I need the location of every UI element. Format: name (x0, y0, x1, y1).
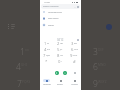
staticText: Settings (48, 24, 54, 26)
staticText: WXYZ (73, 54, 78, 56)
staticText: TUV (60, 54, 64, 56)
button[interactable]: 6 (67, 47, 81, 53)
button[interactable]: Open contacts (40, 15, 81, 21)
button[interactable]: More options (74, 6, 76, 8)
staticText: 7 (17, 78, 22, 90)
staticText: 7 (43, 53, 46, 59)
staticText: Create new contact (48, 11, 62, 13)
staticText: 0412 (57, 38, 64, 42)
button[interactable]: 1 (40, 41, 53, 47)
staticText: 9 (70, 53, 73, 59)
staticText: 6 (93, 61, 98, 73)
button[interactable]: 3 (67, 41, 81, 47)
staticText: 1 (44, 41, 47, 47)
staticText: # (73, 59, 76, 65)
staticText: + (61, 60, 62, 62)
staticText: 5 (57, 47, 60, 53)
button[interactable]: Call (63, 71, 67, 75)
staticText: 1 (20, 46, 25, 58)
staticText: Search contacts (43, 5, 59, 8)
button[interactable]: 8 (53, 53, 67, 59)
staticText: 2 (57, 41, 60, 47)
staticText: ABC (60, 42, 64, 44)
button[interactable]: Settings (40, 22, 81, 28)
button[interactable]: Contacts (67, 78, 81, 90)
button[interactable]: Favourites (40, 78, 53, 90)
staticText: Favourites (43, 83, 51, 85)
button[interactable]: Recents (53, 78, 67, 90)
button[interactable]: 2 (53, 41, 67, 47)
button[interactable]: 9 (67, 53, 81, 59)
staticText: 0 (58, 59, 61, 65)
button[interactable]: Create new contact (40, 9, 81, 15)
button[interactable]: 4 (40, 47, 53, 53)
staticText: GHI (47, 48, 50, 50)
staticText: Contacts (71, 83, 78, 85)
staticText: 3 (71, 41, 74, 47)
staticText: DEF (74, 42, 77, 44)
staticText: * (45, 59, 48, 65)
staticText: oo (47, 42, 49, 44)
staticText: JKL (60, 48, 63, 50)
button[interactable]: 0 (53, 59, 67, 65)
staticText: 6 (71, 47, 74, 53)
button[interactable]: Search contacts (41, 4, 80, 9)
staticText: 10:05 (44, 1, 50, 4)
button[interactable]: Video call (55, 71, 59, 75)
button[interactable]: # (67, 59, 81, 65)
staticText: 3 (93, 46, 98, 58)
button[interactable]: 7 (40, 53, 53, 59)
staticText: 9 (93, 78, 98, 90)
staticText: 8 (57, 53, 60, 59)
staticText: Recents (57, 83, 63, 85)
staticText: PQRS (46, 54, 51, 56)
staticText: 4 (16, 61, 21, 73)
staticText: Open contacts (48, 17, 59, 19)
staticText: MNO (74, 48, 78, 50)
staticText: 4 (44, 47, 47, 53)
button[interactable]: * (40, 59, 53, 65)
button[interactable]: 5 (53, 47, 67, 53)
